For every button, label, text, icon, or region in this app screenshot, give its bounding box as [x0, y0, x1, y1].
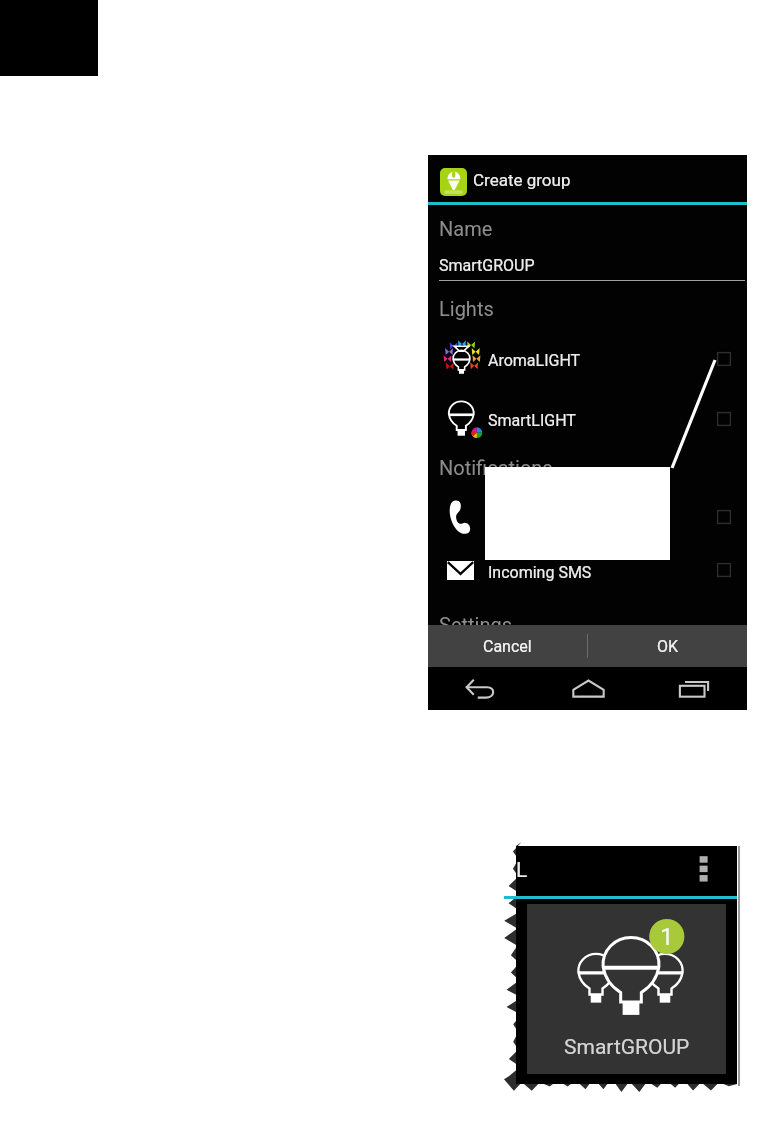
staticText: Notifications	[439, 456, 553, 479]
staticText: SmartGROUP	[564, 1035, 690, 1060]
staticText: OK	[657, 637, 679, 656]
button[interactable]: More options	[692, 850, 714, 888]
staticText: 1	[660, 923, 674, 951]
staticText: AromaLIGHT	[488, 351, 581, 370]
button[interactable]: Recents	[641, 667, 747, 710]
button[interactable]	[428, 395, 747, 437]
button[interactable]	[428, 549, 747, 591]
button[interactable]: Select	[717, 563, 731, 577]
button[interactable]: Home	[535, 667, 641, 710]
button[interactable]: Back	[428, 667, 535, 710]
button[interactable]	[428, 495, 747, 537]
button[interactable]: Select	[717, 510, 731, 524]
staticText: Settings	[439, 613, 513, 636]
staticText: L	[516, 858, 528, 883]
staticText: Lights	[439, 297, 494, 320]
staticText: Incoming SMS	[488, 563, 592, 582]
button[interactable]: OK	[588, 625, 747, 667]
staticText: Create group	[473, 170, 571, 190]
button[interactable]	[428, 155, 747, 202]
staticText: Name	[439, 217, 493, 240]
button[interactable]: Select	[717, 412, 731, 426]
staticText: SmartLIGHT	[488, 411, 576, 430]
staticText: Cancel	[483, 637, 532, 656]
staticText: SmartGROUP	[439, 256, 535, 275]
button[interactable]	[428, 335, 747, 377]
button[interactable]: 1	[527, 904, 726, 1074]
button[interactable]: Select	[717, 352, 731, 366]
button[interactable]: Cancel	[428, 625, 587, 667]
